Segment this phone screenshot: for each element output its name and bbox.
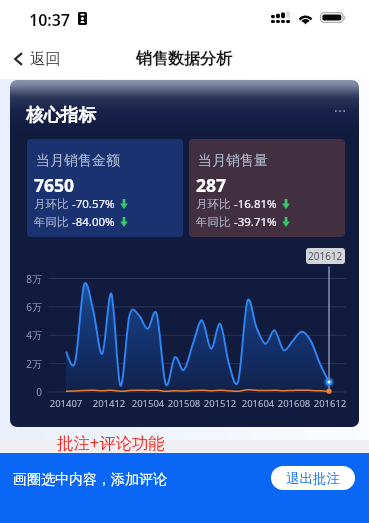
staticText: 返回: [30, 49, 61, 69]
button[interactable]: More options: [325, 100, 355, 122]
staticText: 退出批注: [286, 470, 340, 487]
staticText: 201608: [275, 397, 313, 410]
staticText: 201412: [90, 397, 128, 410]
staticText: 201504: [129, 397, 167, 410]
staticText: -16.81%: [234, 196, 277, 212]
staticText: 201407: [47, 397, 85, 410]
staticText: 当月销售量: [198, 152, 268, 170]
staticText: 4万: [18, 328, 42, 342]
staticText: 201512: [201, 397, 239, 410]
button[interactable]: 当月销售量: [189, 139, 345, 237]
staticText: 287: [196, 173, 227, 197]
staticText: -39.71%: [234, 214, 277, 230]
staticText: 201508: [165, 397, 203, 410]
staticText: 画圈选中内容，添加评论: [13, 471, 167, 489]
staticText: 8万: [18, 272, 42, 286]
staticText: 年同比: [196, 215, 231, 229]
staticText: 月环比: [196, 197, 231, 211]
staticText: 201612: [311, 397, 349, 410]
staticText: 月环比: [34, 197, 69, 211]
button[interactable]: 返回: [0, 42, 75, 76]
staticText: 201604: [239, 397, 277, 410]
staticText: 10:37: [29, 9, 71, 31]
staticText: -84.00%: [72, 214, 115, 230]
staticText: 6万: [18, 300, 42, 314]
staticText: 7650: [34, 173, 75, 197]
button[interactable]: 当月销售金额: [27, 139, 183, 237]
staticText: 销售数据分析: [136, 49, 232, 69]
staticText: 2万: [18, 357, 42, 371]
button[interactable]: 退出批注: [271, 466, 355, 490]
staticText: 批注+评论功能: [57, 431, 165, 453]
staticText: 当月销售金额: [36, 152, 120, 170]
staticText: -70.57%: [72, 196, 115, 212]
staticText: 核心指标: [26, 104, 96, 126]
staticText: 201612: [308, 249, 343, 263]
staticText: 年同比: [34, 215, 69, 229]
staticText: 0: [18, 385, 42, 399]
